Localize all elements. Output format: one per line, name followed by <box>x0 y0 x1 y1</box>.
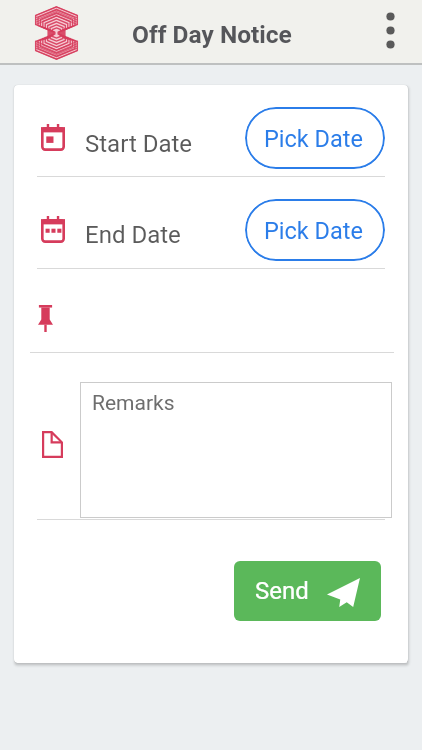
staticText: Start Date <box>85 130 193 158</box>
staticText: Pick Date <box>264 125 363 153</box>
button[interactable]: Pick Date <box>245 199 385 261</box>
button[interactable]: More options <box>366 8 415 57</box>
button[interactable]: Remarks <box>80 382 392 518</box>
button[interactable]: Send <box>234 561 381 621</box>
button[interactable]: Pick Date <box>245 107 385 169</box>
button[interactable] <box>14 177 408 268</box>
staticText: Remarks <box>92 391 175 416</box>
staticText: End Date <box>85 221 181 249</box>
button[interactable] <box>14 85 408 176</box>
staticText: Send <box>255 577 309 605</box>
staticText: Pick Date <box>264 217 363 245</box>
staticText: Off Day Notice <box>132 20 292 49</box>
